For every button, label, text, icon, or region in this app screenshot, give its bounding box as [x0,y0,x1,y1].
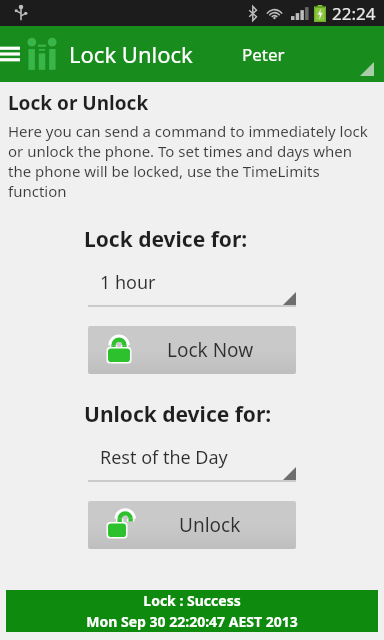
button[interactable]: Peter [242,26,384,82]
staticText: Lock device for: [84,225,248,254]
button[interactable]: 1 hour [88,268,296,308]
staticText: 22:24 [332,2,376,25]
staticText: Lock : Success [143,591,241,610]
staticText: Mon Sep 30 22:20:47 AEST 2013 [86,612,298,631]
button[interactable]: Rest of the Day [88,443,296,483]
staticText: Here you can send a command to immediate… [8,121,376,201]
staticText: Lock Now [167,337,254,363]
staticText: Rest of the Day [100,445,228,470]
button[interactable]: Unlock [88,501,296,549]
button[interactable]: Lock Now [88,326,296,374]
button[interactable]: Open navigation menu [0,26,22,82]
staticText: Unlock [179,512,241,538]
staticText: Unlock device for: [84,400,272,429]
staticText: Peter [242,43,285,66]
staticText: Lock Unlock [69,39,193,69]
staticText: 1 hour [100,270,156,295]
staticText: Lock or Unlock [8,90,149,116]
